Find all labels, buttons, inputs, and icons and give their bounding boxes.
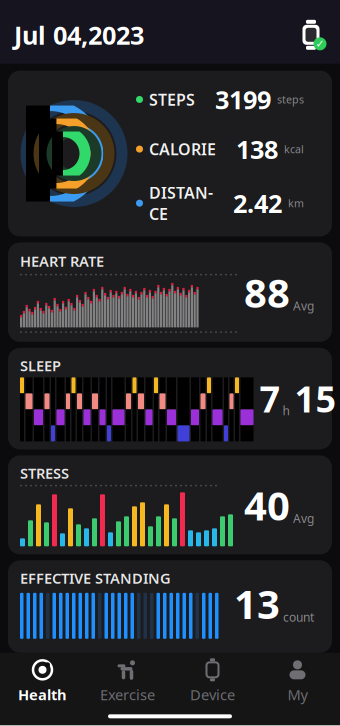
staticText: Health [18,685,67,704]
staticText: SLEEP [20,356,61,375]
button[interactable]: Connected watch [296,19,326,51]
staticText: 3199 [215,83,271,116]
staticText: km [288,196,304,210]
staticText: 15 [294,375,336,422]
staticText: DISTANCE [149,182,213,224]
staticText: Device [190,685,235,704]
staticText: My [287,685,307,704]
staticText: Exercise [100,685,155,704]
staticText: count [283,609,314,625]
staticText: 138 [236,132,278,166]
button[interactable]: HEART RATE [8,242,332,342]
staticText: 13 [234,577,280,630]
button[interactable]: STRESS [8,455,332,554]
staticText: steps [277,92,304,107]
staticText: HEART RATE [20,251,104,271]
staticText: STEPS [149,89,195,110]
staticText: 7 [259,375,280,422]
staticText: Avg [293,298,314,314]
staticText: Jul 04,2023 [14,18,144,52]
staticText: h [282,403,289,418]
button[interactable]: Health [0,653,85,708]
button[interactable]: Exercise [85,653,170,708]
staticText: CALORIE [149,138,216,160]
button[interactable]: STEPS [8,71,332,236]
staticText: ✓ [315,38,324,50]
button[interactable]: Device [170,653,255,708]
button[interactable]: SLEEP [8,348,332,449]
staticText: 88 [244,266,290,319]
button[interactable]: My [255,653,340,708]
staticText: STRESS [20,463,69,483]
staticText: 40 [244,478,290,531]
staticText: kcal [284,142,304,156]
button[interactable]: EFFECTIVE STANDING [8,560,332,653]
staticText: EFFECTIVE STANDING [20,568,171,588]
staticText: Avg [293,510,314,526]
staticText: 2.42 [233,186,282,220]
